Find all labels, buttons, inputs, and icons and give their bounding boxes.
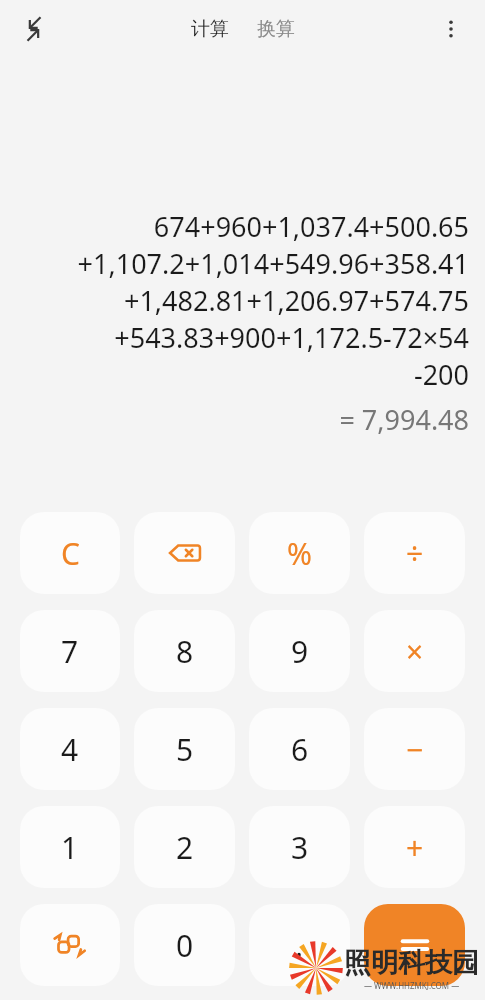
staticText: 674+960+1,037.4+500.65 +1,107.2+1,014+54…	[16, 208, 469, 393]
button[interactable]: %	[249, 512, 350, 594]
staticText: ×	[406, 631, 424, 672]
staticText: 5	[176, 729, 194, 770]
button[interactable]: More options	[429, 7, 473, 51]
staticText: 4	[61, 729, 79, 770]
staticText: 0	[176, 925, 194, 966]
staticText: %	[287, 533, 312, 574]
staticText: 6	[291, 729, 309, 770]
button[interactable]: Collapse	[12, 7, 56, 51]
button[interactable]: 3	[249, 806, 350, 888]
button[interactable]: −	[364, 708, 465, 790]
staticText: 9	[291, 631, 309, 672]
button[interactable]: 8	[134, 610, 235, 692]
button[interactable]: Scientific	[20, 904, 120, 986]
button[interactable]: 7	[20, 610, 120, 692]
button[interactable]: Backspace	[134, 512, 235, 594]
button[interactable]: 2	[134, 806, 235, 888]
staticText: = 7,994.48	[16, 401, 469, 438]
button[interactable]: 计算	[185, 13, 235, 45]
button[interactable]: ×	[364, 610, 465, 692]
button[interactable]: 6	[249, 708, 350, 790]
staticText: C	[61, 533, 80, 574]
button[interactable]: 9	[249, 610, 350, 692]
staticText: 7	[61, 631, 79, 672]
staticText: −	[406, 729, 424, 770]
staticText: ÷	[406, 533, 424, 574]
staticText: 2	[176, 827, 194, 868]
staticText: 8	[176, 631, 194, 672]
staticText: 换算	[257, 17, 295, 41]
button[interactable]: 0	[134, 904, 235, 986]
button[interactable]: ÷	[364, 512, 465, 594]
staticText: 计算	[191, 17, 229, 41]
button[interactable]: 换算	[251, 13, 301, 45]
staticText: 3	[291, 827, 309, 868]
staticText: 照明科技园	[344, 946, 479, 980]
button[interactable]: Equals	[364, 904, 465, 986]
button[interactable]: 1	[20, 806, 120, 888]
button[interactable]: +	[364, 806, 465, 888]
button[interactable]: 5	[134, 708, 235, 790]
button[interactable]: C	[20, 512, 120, 594]
staticText: 1	[61, 827, 79, 868]
button[interactable]: 4	[20, 708, 120, 790]
staticText: — WWW.HHZMKJ.COM —	[364, 980, 460, 991]
staticText: +	[406, 827, 424, 868]
button[interactable]: .	[249, 904, 350, 986]
staticText: .	[295, 925, 304, 966]
